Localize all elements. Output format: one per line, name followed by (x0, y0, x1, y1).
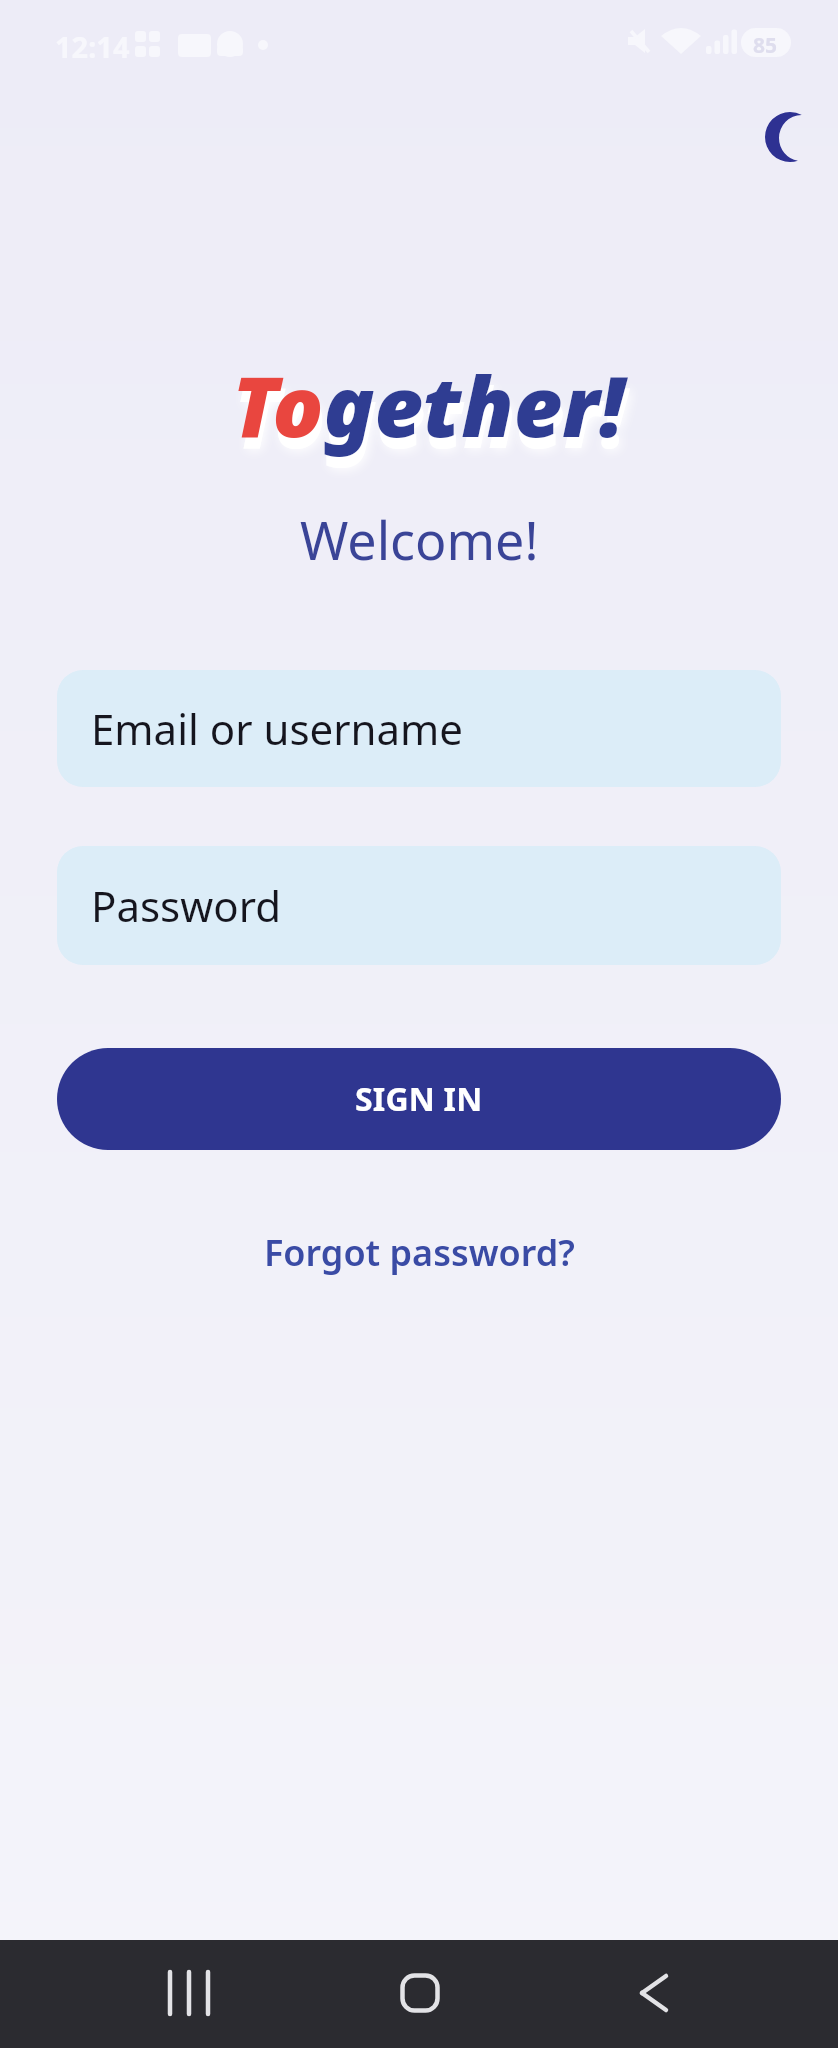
staticText: 85 (753, 31, 778, 60)
staticText: 12:14 (55, 27, 130, 66)
button[interactable]: Forgot password? (264, 1228, 575, 1277)
staticText: Password (91, 877, 281, 934)
button[interactable] (389, 1962, 451, 2024)
button[interactable] (623, 1962, 685, 2024)
button[interactable] (752, 100, 812, 160)
staticText: SIGN IN (355, 1077, 483, 1121)
staticText: Email or username (91, 700, 464, 757)
staticText: Forgot password? (264, 1228, 575, 1277)
staticText: Together! (232, 347, 625, 461)
button[interactable] (158, 1962, 220, 2024)
staticText: Together! (234, 358, 627, 472)
staticText: Welcome! (300, 504, 539, 575)
button[interactable]: Email or username (57, 670, 781, 787)
button[interactable]: Password (57, 846, 781, 965)
button[interactable]: SIGN IN (57, 1048, 781, 1150)
